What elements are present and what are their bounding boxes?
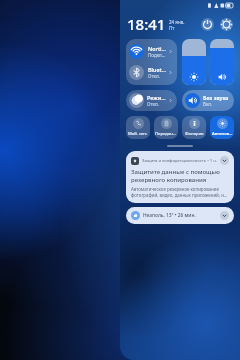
- other: Wi-Fi: [129, 44, 144, 59]
- button[interactable]: Silent mode: [182, 90, 234, 111]
- staticText: 24 янв.: [169, 19, 185, 25]
- staticText: Подкл...: [148, 52, 166, 58]
- staticText: Вкл.: [203, 101, 213, 107]
- button[interactable]: Expand: [220, 211, 229, 220]
- button[interactable]: Brightness: [182, 39, 206, 85]
- staticText: Автоматическое резервное копирование фот…: [131, 186, 229, 198]
- button[interactable]: Volume: [210, 39, 234, 85]
- staticText: Без звука: [203, 94, 229, 101]
- other: Silent mode: [185, 93, 200, 108]
- staticText: Фонарик: [185, 131, 204, 137]
- button[interactable]: Bluetooth: [126, 62, 177, 83]
- staticText: Bluetoo...: [148, 66, 167, 73]
- button[interactable]: Collapse: [220, 156, 229, 165]
- button[interactable]: Неаполь, 13° • 26 мин.: [126, 207, 234, 224]
- button[interactable]: Transfer: [154, 116, 178, 139]
- button[interactable]: Flashlight: [182, 116, 206, 139]
- button[interactable]: Защита и конфиденциальность • 1 ч.: [126, 151, 234, 203]
- staticText: Передач...: [155, 131, 177, 137]
- other: Dark mode: [129, 93, 144, 108]
- staticText: Nortil...: [148, 45, 167, 52]
- staticText: Автопов...: [212, 131, 233, 137]
- staticText: 18:41: [127, 14, 166, 34]
- staticText: Откл.: [147, 101, 159, 107]
- staticText: Неаполь, 13° • 26 мин.: [143, 212, 220, 219]
- button[interactable]: Mobile data: [126, 116, 150, 139]
- button[interactable]: Settings: [220, 18, 233, 31]
- staticText: Режим...: [147, 94, 167, 101]
- button[interactable]: Auto rotate: [210, 116, 234, 139]
- other: Bluetooth: [129, 65, 144, 80]
- button[interactable]: Power: [201, 18, 214, 31]
- staticText: Откл.: [148, 73, 160, 79]
- staticText: Защита и конфиденциальность • 1 ч.: [142, 158, 220, 164]
- button[interactable]: Wi-Fi: [126, 41, 177, 62]
- staticText: Пт: [169, 25, 175, 31]
- button[interactable]: Dark mode: [126, 90, 177, 111]
- staticText: Защитите данные с помощью резервного коп…: [131, 168, 229, 184]
- staticText: Моб. инт.: [128, 131, 148, 137]
